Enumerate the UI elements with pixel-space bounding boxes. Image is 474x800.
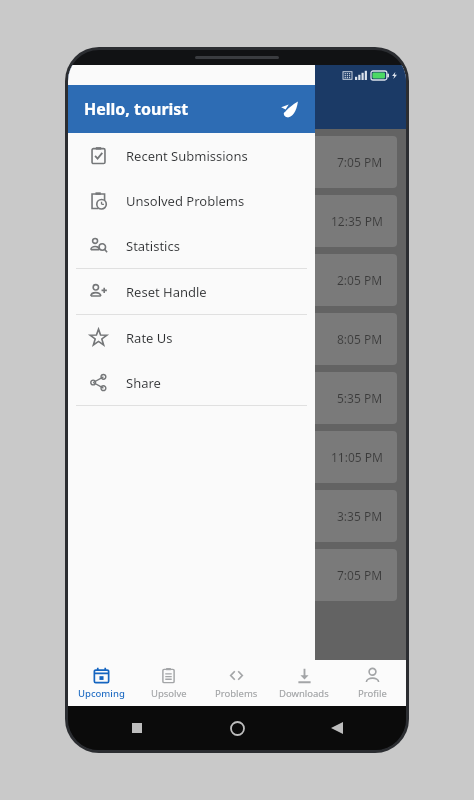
staticText: 5:35 PM — [337, 390, 383, 406]
staticText: Statistics — [126, 237, 180, 255]
button[interactable]: Recent apps — [124, 715, 150, 741]
button[interactable]: Reset Handle — [68, 269, 315, 314]
button[interactable]: 3:35 PM — [77, 490, 397, 542]
button[interactable]: 11:05 PM — [77, 431, 397, 483]
button[interactable]: 8:05 PM — [77, 313, 397, 365]
staticText: 12:35 PM — [331, 213, 383, 229]
button[interactable]: Share — [68, 360, 315, 405]
button[interactable]: Downloads — [270, 660, 338, 706]
staticText: 8:05 PM — [337, 331, 383, 347]
button[interactable]: 5:35 PM — [77, 372, 397, 424]
staticText: 7:05 PM — [337, 154, 383, 170]
staticText: Share — [126, 374, 161, 392]
staticText: Codeforces — [128, 97, 209, 117]
staticText: 7:05 PM — [337, 567, 383, 583]
button[interactable]: Upsolve — [135, 660, 202, 706]
button[interactable]: Unsolved Problems — [68, 178, 315, 223]
staticText: Unsolved Problems — [126, 192, 245, 210]
staticText: Rate Us — [126, 329, 173, 347]
button[interactable]: 7:05 PM — [77, 136, 397, 188]
button[interactable]: Rate Us — [68, 315, 315, 360]
staticText: 3:35 PM — [337, 508, 383, 524]
button[interactable]: 12:35 PM — [77, 195, 397, 247]
button[interactable]: Back — [324, 715, 350, 741]
button[interactable]: Statistics — [68, 223, 315, 268]
button[interactable]: 2:05 PM — [77, 254, 397, 306]
button[interactable]: Hello, tourist — [68, 85, 315, 133]
button[interactable]: Profile — [338, 660, 406, 706]
staticText: Downloads — [279, 687, 329, 700]
button[interactable]: Upcoming — [68, 660, 135, 706]
staticText: Profile — [358, 687, 387, 700]
staticText: 11:05 PM — [331, 449, 383, 465]
staticText: Problems — [215, 687, 258, 700]
staticText: Hello, tourist — [84, 98, 189, 120]
button[interactable]: Recent Submissions — [68, 133, 315, 178]
staticText: 2:05 PM — [337, 272, 383, 288]
staticText: Upsolve — [151, 687, 187, 700]
button[interactable]: Problems — [202, 660, 270, 706]
button[interactable]: Home — [224, 715, 250, 741]
staticText: Reset Handle — [126, 283, 207, 301]
staticText: Recent Submissions — [126, 147, 248, 165]
staticText: Upcoming — [78, 687, 125, 700]
button[interactable]: 7:05 PM — [77, 549, 397, 601]
